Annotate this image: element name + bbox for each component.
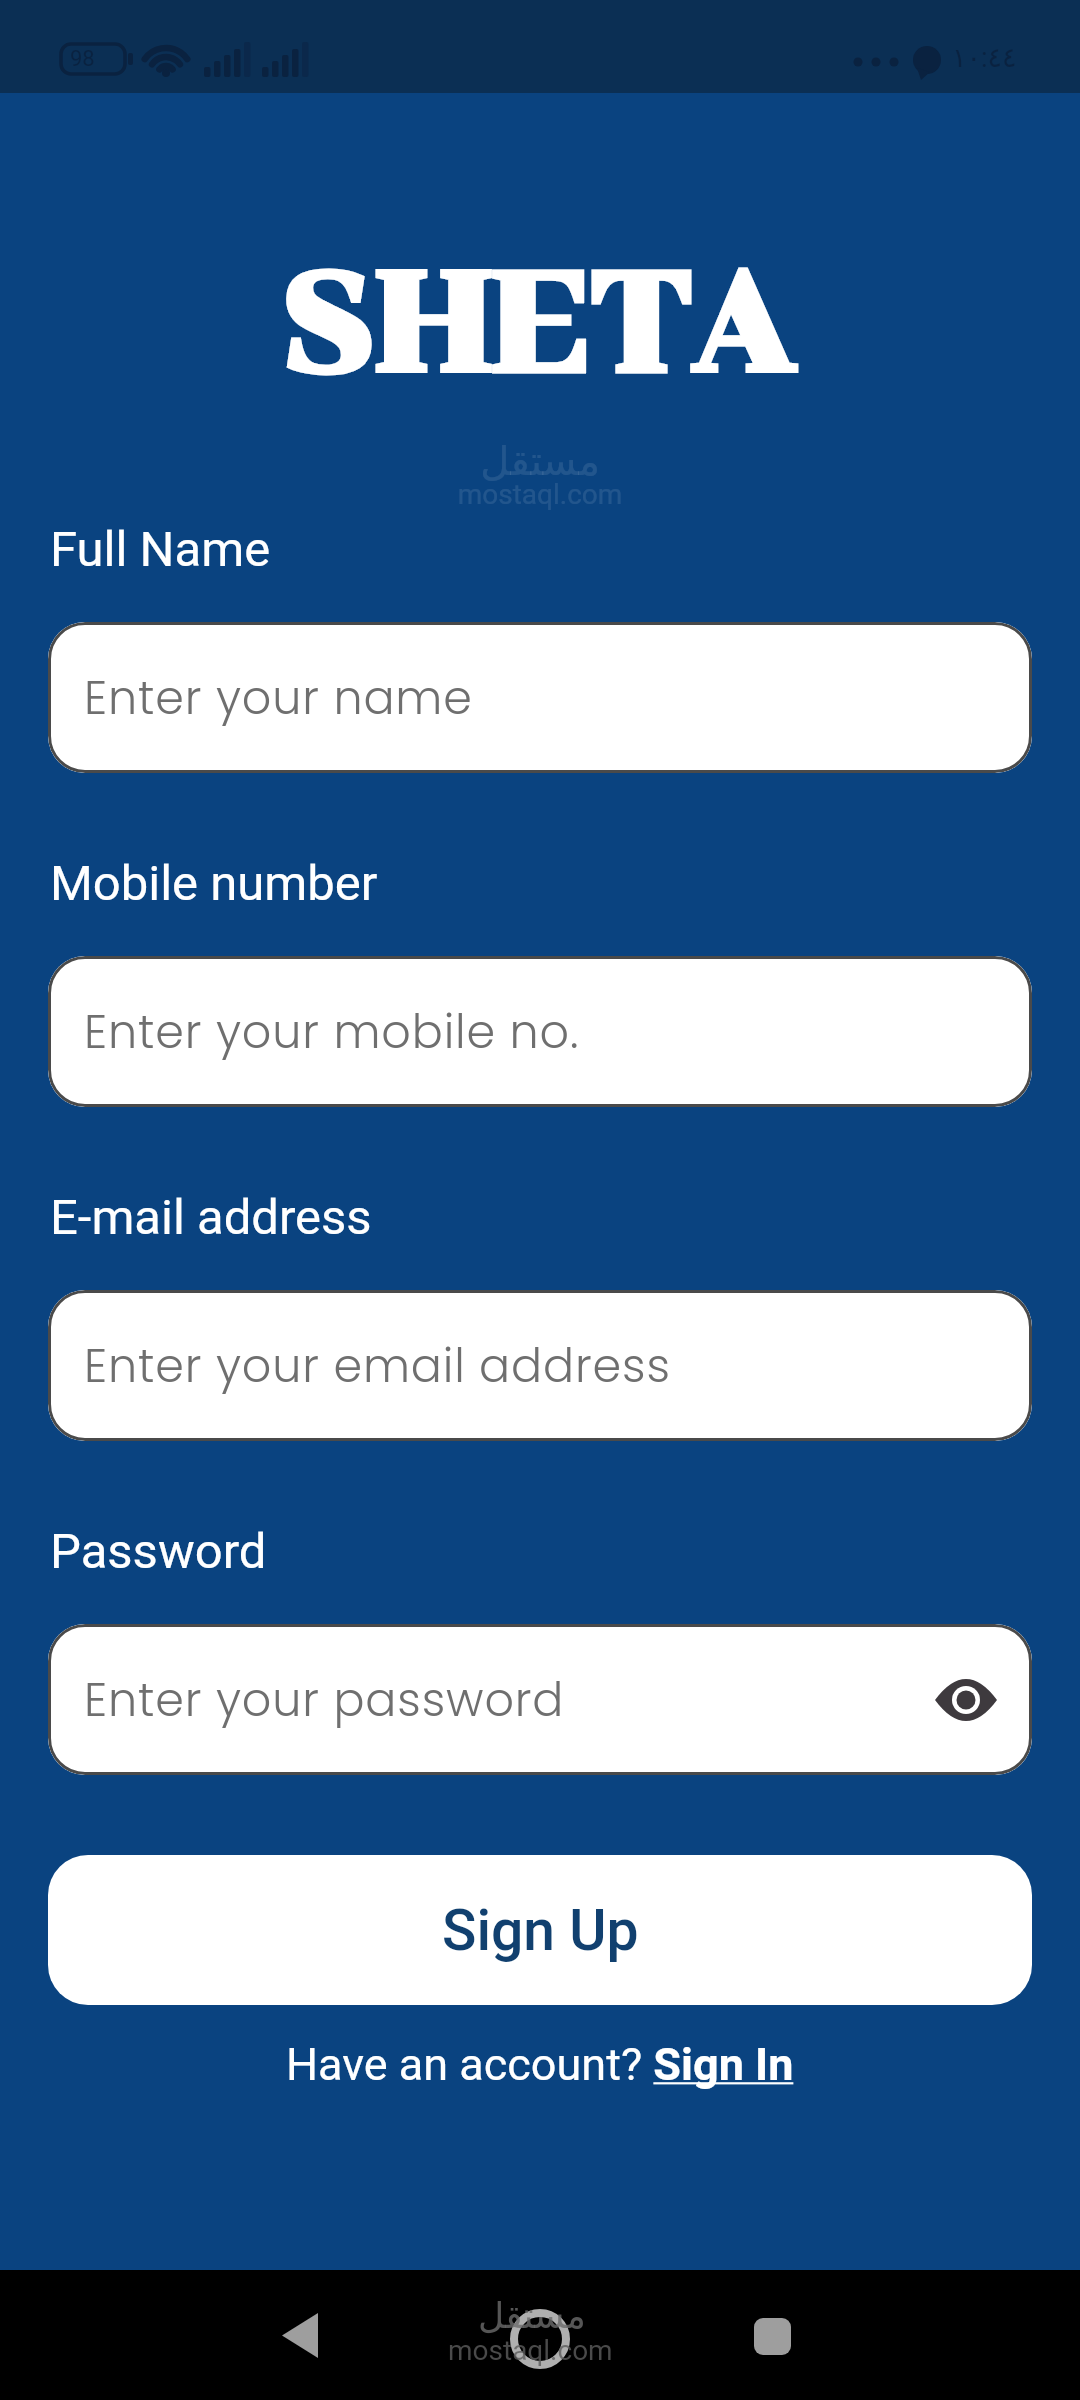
button[interactable]: Enter your mobile no. [48, 956, 1032, 1107]
staticText: Enter your password [84, 1668, 565, 1732]
button[interactable] [497, 2293, 582, 2378]
staticText: E-mail address [50, 1189, 372, 1246]
staticText: mostaql.com [448, 2334, 613, 2367]
staticText: Sign Up [442, 1897, 639, 1964]
staticText: Password [50, 1523, 267, 1580]
button[interactable]: Enter your email address [48, 1290, 1032, 1441]
staticText: مستقل [0, 438, 1080, 485]
button[interactable] [262, 2293, 347, 2378]
staticText: SHETA [282, 239, 798, 405]
staticText: Enter your mobile no. [84, 1000, 580, 1064]
staticText: مستقل [478, 2295, 586, 2337]
staticText: Enter your email address [84, 1334, 671, 1398]
button[interactable]: Enter your password [48, 1624, 1032, 1775]
staticText: Full Name [50, 521, 271, 578]
staticText: Have an account? Sign In [286, 2038, 794, 2091]
staticText: Mobile number [50, 855, 378, 912]
staticText: 98 [70, 46, 95, 72]
staticText: Enter your name [84, 666, 473, 730]
staticText: mostaql.com [0, 478, 1080, 511]
button[interactable]: Have an account? Sign In [0, 2038, 1080, 2091]
staticText: ١٠:٤٤ [952, 42, 1017, 74]
button[interactable]: Enter your name [48, 622, 1032, 773]
button[interactable] [732, 2293, 817, 2378]
button[interactable]: Sign Up [48, 1855, 1032, 2005]
staticText: SHETA [282, 239, 798, 405]
